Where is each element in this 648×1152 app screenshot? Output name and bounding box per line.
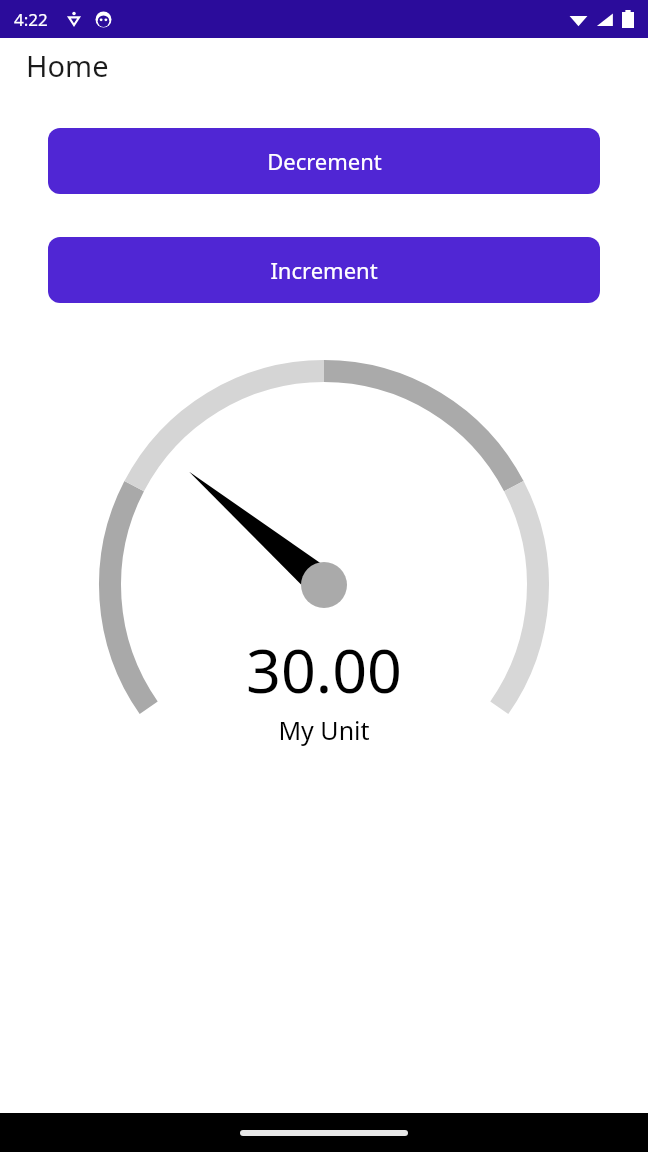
staticText: Home — [26, 46, 109, 85]
other: Accessibility — [66, 11, 82, 27]
button[interactable]: Decrement — [48, 128, 600, 194]
staticText: Decrement — [267, 146, 382, 176]
staticText: 4:22 — [14, 8, 48, 31]
other: Wi-Fi — [569, 10, 588, 29]
staticText: My Unit — [278, 713, 370, 747]
other: App icon — [95, 11, 112, 28]
other: Battery — [622, 9, 634, 29]
button[interactable]: Increment — [48, 237, 600, 303]
other: Signal — [595, 10, 614, 29]
staticText: 30.00 — [246, 628, 402, 711]
staticText: Increment — [270, 255, 378, 285]
